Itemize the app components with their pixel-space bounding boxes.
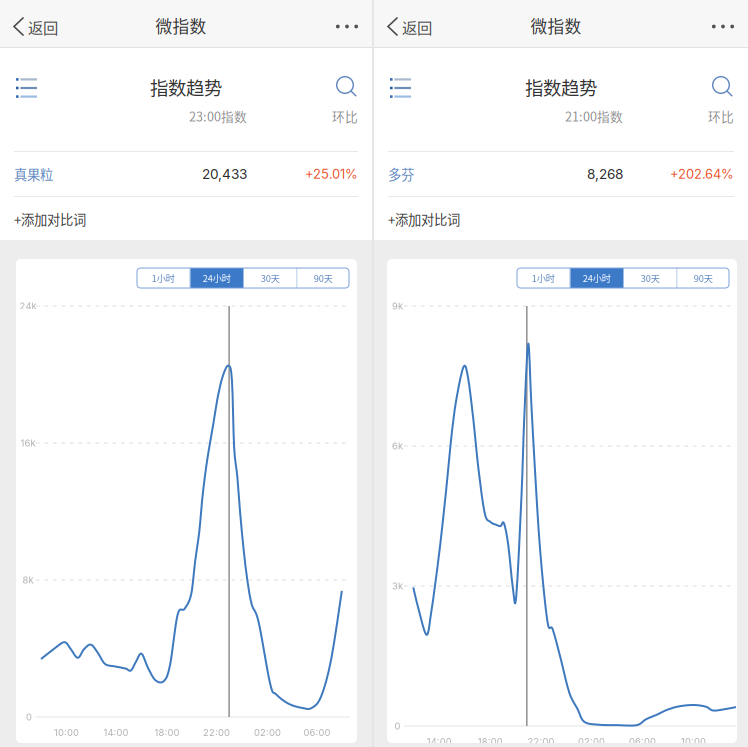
staticText: 指数趋势 xyxy=(525,74,597,100)
staticText: 多芬 xyxy=(388,164,414,184)
staticText: 8k xyxy=(22,574,33,586)
button[interactable]: 90天 xyxy=(677,268,729,288)
staticText: 22:00 xyxy=(528,736,555,747)
staticText: 18:00 xyxy=(154,727,179,738)
button[interactable]: 多芬 xyxy=(374,152,422,196)
staticText: 23:00指数 xyxy=(189,107,247,125)
button[interactable]: Ranking list xyxy=(382,70,419,106)
staticText: 微指数 xyxy=(155,13,206,37)
staticText: 30天 xyxy=(641,271,660,285)
button[interactable]: 30天 xyxy=(624,268,676,288)
staticText: 环比 xyxy=(708,107,734,125)
staticText: +202.64% xyxy=(670,166,734,182)
staticText: 返回 xyxy=(402,16,432,38)
staticText: 14:00 xyxy=(427,736,452,747)
staticText: 10:00 xyxy=(54,727,79,738)
staticText: 06:00 xyxy=(303,727,330,738)
staticText: 90天 xyxy=(314,271,333,285)
staticText: 0 xyxy=(394,720,400,732)
button[interactable]: Search xyxy=(706,70,742,106)
staticText: 24小时 xyxy=(203,271,231,285)
button[interactable]: 90天 xyxy=(297,268,349,288)
staticText: 指数趋势 xyxy=(150,74,222,100)
staticText: 02:00 xyxy=(578,736,605,747)
staticText: 微指数 xyxy=(530,13,581,37)
staticText: 18:00 xyxy=(478,736,503,747)
staticText: 8,268 xyxy=(587,166,623,182)
staticText: 9k xyxy=(392,300,403,312)
button[interactable]: Search xyxy=(330,70,366,106)
button[interactable]: More options xyxy=(322,8,372,44)
staticText: +添加对比词 xyxy=(388,209,460,229)
staticText: 3k xyxy=(392,580,403,592)
staticText: 20,433 xyxy=(202,166,247,182)
staticText: 1小时 xyxy=(532,271,555,285)
staticText: 环比 xyxy=(332,107,358,125)
staticText: 90天 xyxy=(694,271,713,285)
staticText: 14:00 xyxy=(103,727,128,738)
button[interactable]: +添加对比词 xyxy=(0,198,100,240)
staticText: 6k xyxy=(392,440,403,452)
button[interactable]: 24小时 xyxy=(570,268,623,288)
staticText: 真果粒 xyxy=(14,164,53,184)
staticText: 返回 xyxy=(28,16,58,38)
staticText: 10:00 xyxy=(681,736,706,747)
staticText: 1小时 xyxy=(152,271,175,285)
staticText: 24k xyxy=(19,300,36,312)
staticText: +25.01% xyxy=(305,166,358,182)
staticText: 16k xyxy=(20,437,35,449)
staticText: 21:00指数 xyxy=(565,107,623,125)
button[interactable]: 返回 xyxy=(0,3,68,50)
staticText: 02:00 xyxy=(254,727,281,738)
button[interactable]: +添加对比词 xyxy=(374,198,474,240)
button[interactable]: Ranking list xyxy=(8,70,45,106)
button[interactable]: 1小时 xyxy=(137,268,189,288)
button[interactable]: 30天 xyxy=(244,268,296,288)
button[interactable]: More options xyxy=(698,8,748,44)
button[interactable]: 1小时 xyxy=(517,268,569,288)
staticText: 24小时 xyxy=(583,271,611,285)
staticText: +添加对比词 xyxy=(14,209,86,229)
staticText: 30天 xyxy=(261,271,280,285)
staticText: 22:00 xyxy=(203,727,230,738)
button[interactable]: 真果粒 xyxy=(0,152,61,196)
button[interactable]: 返回 xyxy=(374,3,442,50)
button[interactable]: 24小时 xyxy=(190,268,243,288)
staticText: 0 xyxy=(26,711,32,723)
staticText: 06:00 xyxy=(629,736,656,747)
